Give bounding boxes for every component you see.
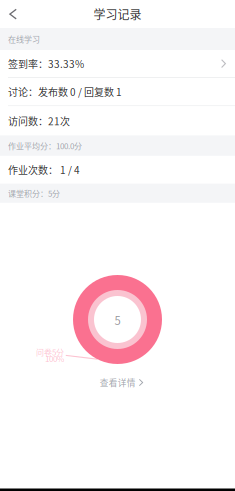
button[interactable]: 签到率：33.33% — [0, 50, 235, 77]
staticText: 访问数：21次 — [8, 114, 70, 128]
staticText: 问卷5分 — [36, 346, 64, 358]
button[interactable]: 查看详情 — [100, 374, 143, 390]
staticText: 签到率：33.33% — [8, 56, 84, 71]
staticText: 学习记录 — [93, 5, 141, 23]
staticText: 在线学习 — [8, 33, 40, 45]
staticText: 作业次数： 1 / 4 — [8, 162, 80, 177]
staticText: 查看详情 — [100, 376, 136, 389]
staticText: 5 — [114, 312, 120, 328]
button[interactable]: Back — [0, 0, 26, 28]
staticText: 100% — [45, 353, 64, 364]
staticText: 课堂积分：5分 — [8, 187, 60, 199]
staticText: 讨论：发布数 0 / 回复数 1 — [8, 84, 122, 99]
staticText: 作业平均分：100.0分 — [8, 140, 82, 151]
